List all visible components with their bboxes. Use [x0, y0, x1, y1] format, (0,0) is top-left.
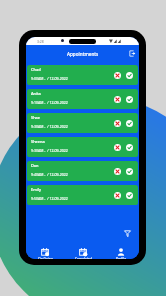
button[interactable]: Cancel appointment	[114, 120, 121, 127]
staticText: Sheena	[31, 139, 45, 144]
button[interactable]: Anita	[27, 89, 138, 109]
staticText: 9:40AM - / 12-09-2022	[31, 172, 68, 177]
staticText: Emily	[31, 187, 42, 192]
button[interactable]: Cancel appointment	[114, 144, 121, 151]
staticText: Chad	[31, 67, 41, 72]
staticText: Profile	[116, 256, 126, 259]
button[interactable]: Accept appointment	[126, 72, 133, 79]
button[interactable]: Logout	[129, 50, 136, 57]
staticText: Appointments	[67, 51, 99, 57]
staticText: 3:28	[37, 39, 44, 44]
staticText: Dan	[31, 163, 39, 168]
button[interactable]: Accept appointment	[126, 120, 133, 127]
button[interactable]: Cancel appointment	[114, 192, 121, 199]
button[interactable]: Filter	[124, 230, 131, 237]
staticText: 9:10AM - / 12-09-2022	[31, 100, 68, 105]
button[interactable]: Shae	[27, 113, 138, 133]
staticText: 9:30AM - / 12-09-2022	[31, 148, 68, 153]
staticText: 9:30AM - / 12-09-2022	[31, 124, 68, 129]
button[interactable]: Accept appointment	[126, 168, 133, 175]
button[interactable]: Dan	[27, 161, 138, 181]
button[interactable]: Accept appointment	[126, 144, 133, 151]
staticText: 9:50AM - / 12-09-2022	[31, 196, 68, 201]
button[interactable]: Chad	[27, 65, 138, 85]
button[interactable]: Sheena	[27, 137, 138, 157]
button[interactable]: Accept appointment	[126, 96, 133, 103]
staticText: On Going	[38, 256, 53, 259]
button[interactable]: Emily	[27, 185, 138, 205]
button[interactable]: On Going	[26, 245, 64, 259]
staticText: Anita	[31, 91, 41, 96]
staticText: 9:00AM - / 12-09-2022	[31, 76, 68, 81]
button[interactable]: Completed	[64, 245, 102, 259]
staticText: Completed	[75, 256, 92, 259]
button[interactable]: Cancel appointment	[114, 168, 121, 175]
button[interactable]: Cancel appointment	[114, 72, 121, 79]
button[interactable]: Accept appointment	[126, 192, 133, 199]
staticText: Shae	[31, 115, 41, 120]
button[interactable]: Cancel appointment	[114, 96, 121, 103]
button[interactable]: Profile	[102, 245, 139, 259]
